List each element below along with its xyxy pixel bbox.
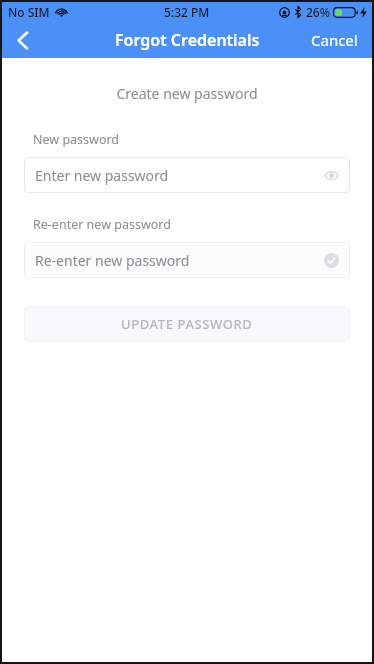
- staticText: Re-enter new password: [33, 216, 171, 233]
- button[interactable]: Re-enter new password: [24, 242, 350, 278]
- button[interactable]: UPDATE PASSWORD: [24, 306, 350, 342]
- button[interactable]: Back: [2, 22, 44, 58]
- staticText: New password: [33, 131, 120, 148]
- button[interactable]: Cancel: [297, 22, 372, 58]
- button[interactable]: Enter new password: [24, 157, 350, 193]
- staticText: UPDATE PASSWORD: [121, 315, 253, 333]
- staticText: Create new password: [2, 84, 372, 103]
- button[interactable]: Clear: [321, 250, 341, 270]
- staticText: Cancel: [311, 30, 358, 50]
- staticText: Re-enter new password: [35, 251, 190, 270]
- staticText: Enter new password: [35, 166, 169, 185]
- button[interactable]: Show password: [321, 165, 341, 185]
- staticText: Forgot Credentials: [115, 29, 260, 51]
- staticText: No SIM: [8, 4, 50, 20]
- staticText: 26%: [306, 4, 330, 20]
- staticText: 5:32 PM: [164, 4, 210, 20]
